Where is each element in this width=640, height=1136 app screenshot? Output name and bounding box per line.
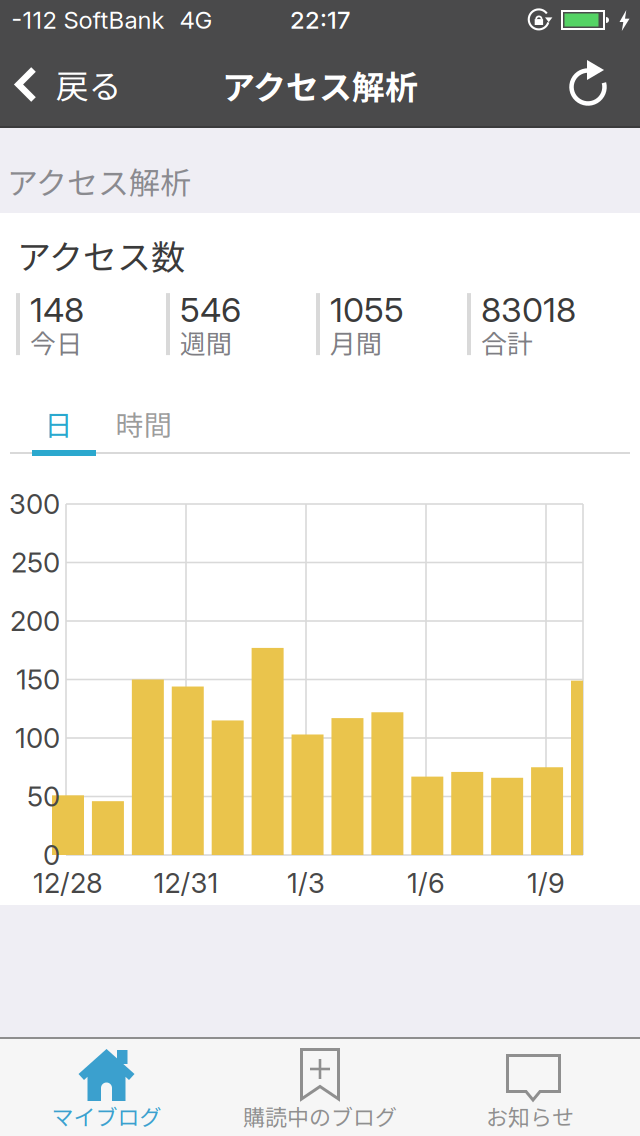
- staticText: 月間: [330, 323, 382, 361]
- staticText: 200: [10, 604, 60, 638]
- staticText: 今日: [30, 323, 82, 361]
- staticText: 0: [43, 838, 60, 872]
- staticText: 時間: [115, 403, 171, 444]
- staticText: 日: [44, 403, 72, 444]
- staticText: 1/9: [527, 866, 565, 900]
- button[interactable]: お知らせ: [427, 1039, 640, 1136]
- button[interactable]: 戻る: [0, 40, 145, 128]
- staticText: マイブログ: [51, 1100, 161, 1132]
- staticText: 546: [180, 289, 241, 330]
- staticText: 83018: [481, 289, 576, 330]
- staticText: 100: [15, 721, 60, 755]
- button[interactable]: 更新: [566, 62, 614, 110]
- staticText: お知らせ: [486, 1100, 574, 1132]
- staticText: 150: [16, 663, 60, 696]
- button[interactable]: 購読中のブログ: [213, 1039, 427, 1136]
- button[interactable]: 時間: [100, 380, 186, 466]
- staticText: 22:17: [290, 5, 350, 34]
- staticText: 4G: [179, 5, 212, 34]
- staticText: 148: [30, 289, 84, 330]
- staticText: 1055: [330, 289, 404, 330]
- staticText: 合計: [481, 323, 533, 361]
- staticText: 1/3: [287, 866, 325, 900]
- staticText: アクセス数: [17, 230, 185, 280]
- staticText: 1/6: [407, 866, 445, 900]
- staticText: -112 SoftBank: [11, 5, 164, 34]
- staticText: 250: [11, 546, 60, 579]
- staticText: 週間: [180, 323, 232, 361]
- staticText: 50: [27, 780, 60, 813]
- staticText: 12/28: [33, 866, 103, 900]
- staticText: 戻る: [55, 60, 121, 108]
- staticText: 購読中のブログ: [243, 1100, 397, 1132]
- staticText: 300: [9, 487, 60, 521]
- button[interactable]: 日: [15, 380, 101, 466]
- button[interactable]: マイブログ: [0, 1039, 213, 1136]
- staticText: 12/31: [153, 866, 218, 900]
- staticText: アクセス解析: [7, 159, 191, 203]
- staticText: アクセス解析: [222, 61, 418, 109]
